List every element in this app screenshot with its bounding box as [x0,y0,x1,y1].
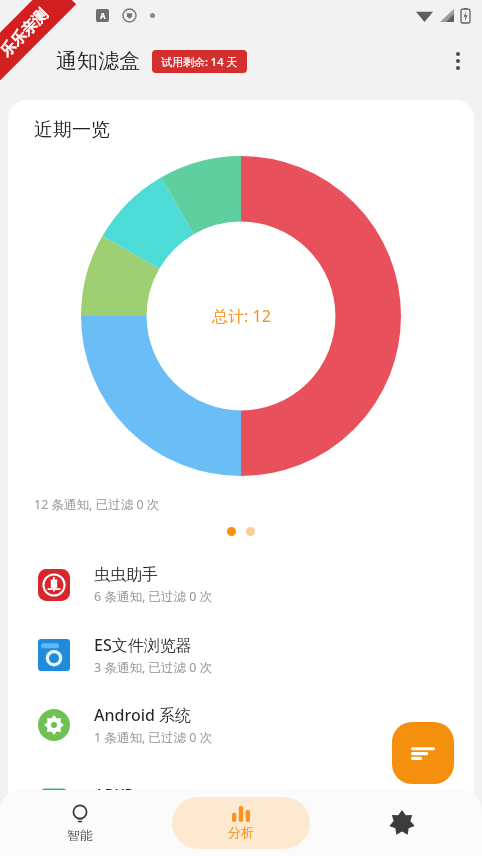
staticText: 1 条通知, 已过滤 0 次 [94,729,213,746]
staticText: 通知滤盒 [56,48,140,74]
staticText: 虫虫助手 [94,565,158,585]
staticText: 3 条通知, 已过滤 0 次 [94,659,213,676]
staticText: A [100,10,106,21]
button[interactable]: More options [434,37,482,85]
staticText: 分析 [228,824,254,840]
button[interactable]: Filter [392,722,454,784]
button[interactable]: 智能 [0,790,160,856]
button[interactable]: APKPure [8,760,474,830]
staticText: 智能 [67,827,93,843]
button[interactable]: Android 系统 [8,690,474,760]
staticText: 乐乐亲测 [0,5,52,61]
button[interactable]: ES文件浏览器 [8,620,474,690]
button[interactable]: 试用剩余: 14 天 [152,50,247,73]
staticText: 总计: 12 [212,305,271,327]
staticText: 12 条通知, 已过滤 0 次 [34,496,160,513]
button[interactable]: Settings [321,790,482,856]
button[interactable]: 分析 [172,797,310,849]
staticText: ES文件浏览器 [94,634,192,656]
staticText: APKPure [94,784,160,806]
staticText: 近期一览 [34,118,110,142]
button[interactable]: 虫虫助手 [8,550,474,620]
staticText: 试用剩余: 14 天 [161,54,238,69]
staticText: Android 系统 [94,704,192,726]
staticText: 6 条通知, 已过滤 0 次 [94,588,213,605]
